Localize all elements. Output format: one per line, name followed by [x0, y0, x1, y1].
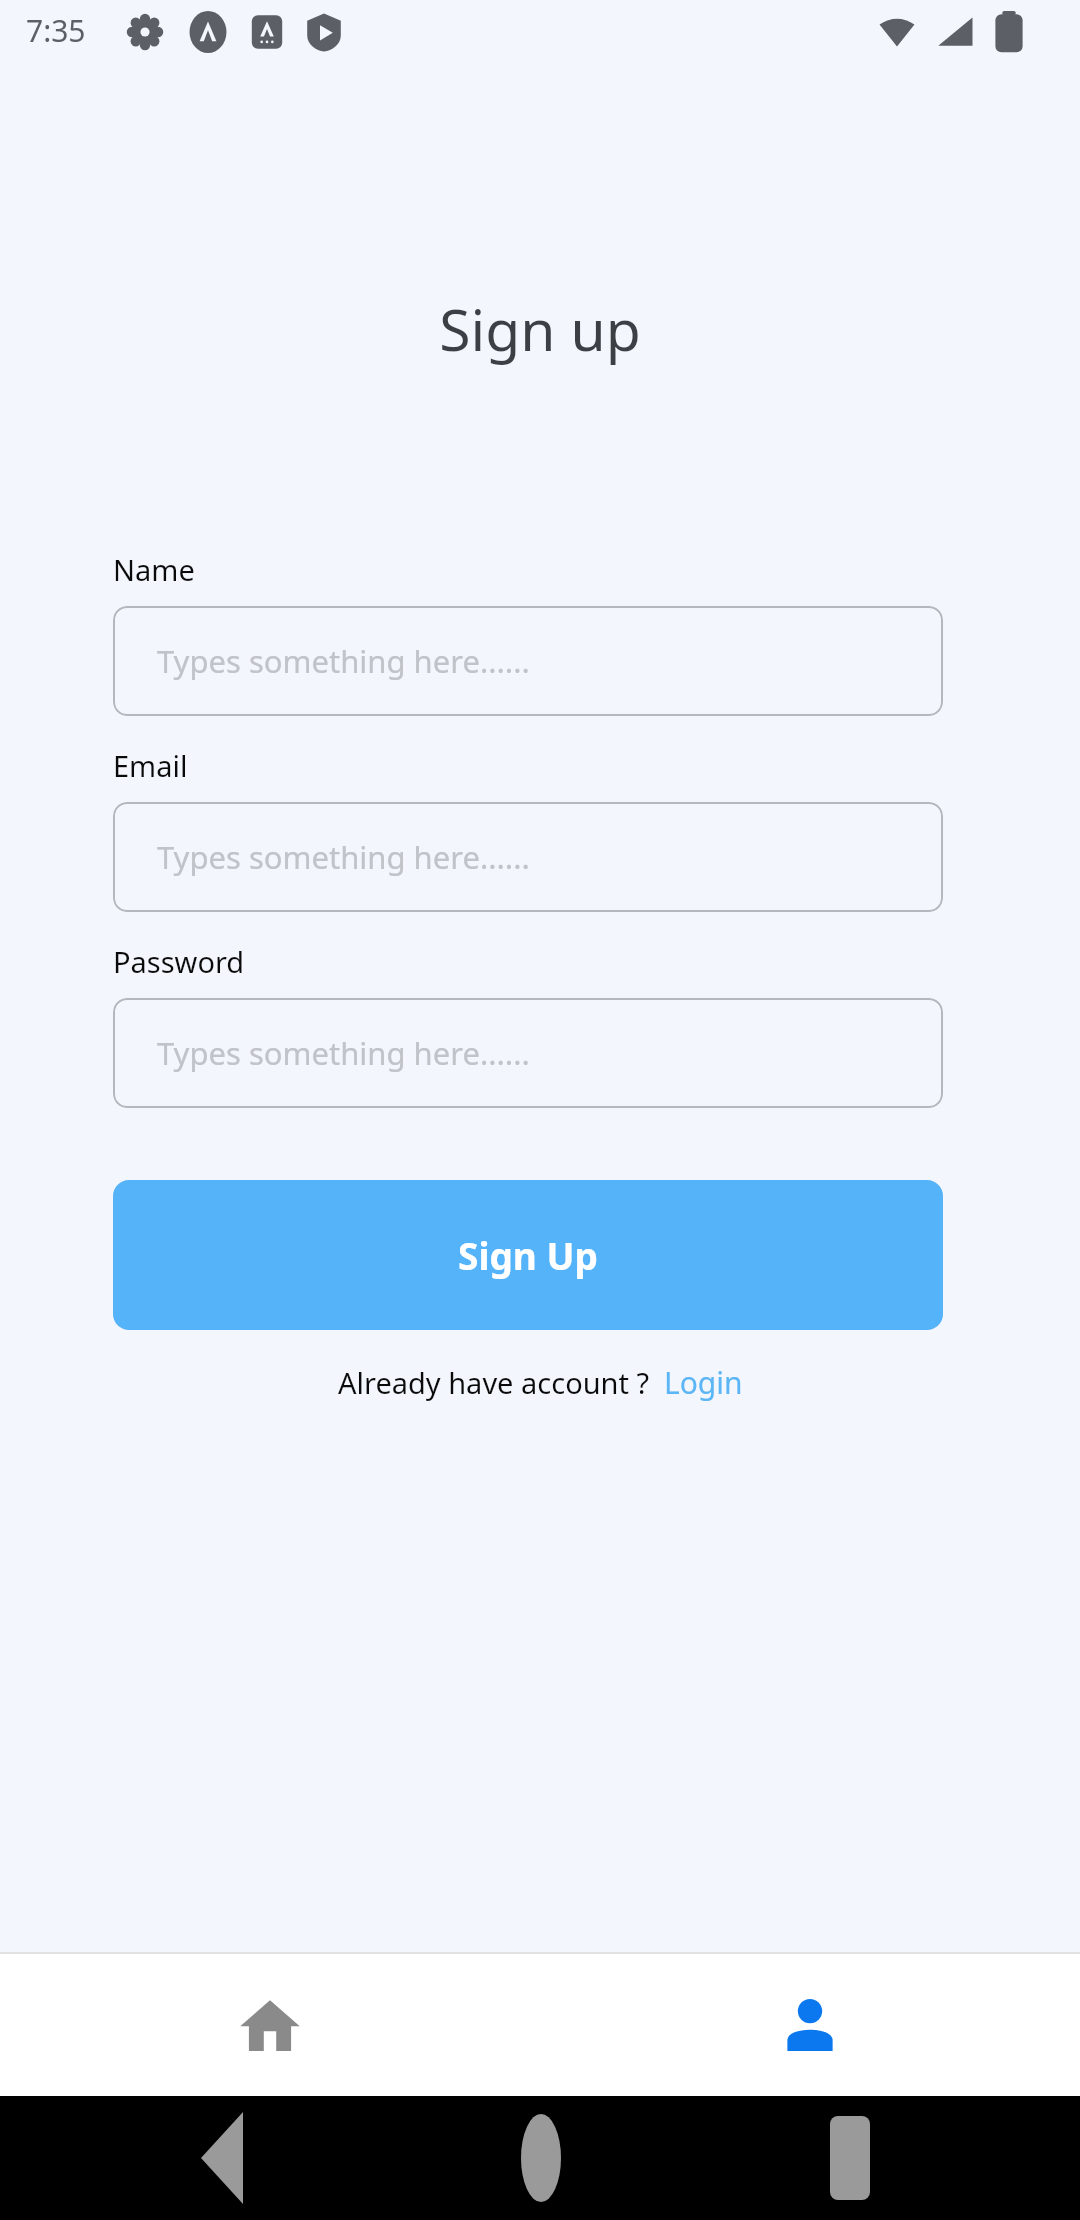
staticText: Email: [113, 746, 188, 785]
button[interactable]: Types something here......: [113, 606, 943, 716]
staticText: 7:35: [26, 10, 86, 51]
staticText: Types something here......: [157, 836, 530, 878]
button[interactable]: Profile: [540, 1954, 1080, 2096]
staticText: Already have account ?: [338, 1363, 650, 1402]
button[interactable]: Types something here......: [113, 998, 943, 1108]
button[interactable]: Home: [0, 1954, 540, 2096]
staticText: Sign Up: [458, 1230, 598, 1280]
staticText: Types something here......: [157, 1032, 530, 1074]
button[interactable]: Types something here......: [113, 802, 943, 912]
staticText: Login: [664, 1362, 743, 1403]
staticText: Types something here......: [157, 640, 530, 682]
button[interactable]: Login: [664, 1362, 743, 1403]
staticText: Name: [113, 550, 195, 589]
staticText: Password: [113, 942, 245, 981]
staticText: Sign up: [0, 290, 1080, 368]
button[interactable]: Sign Up: [113, 1180, 943, 1330]
